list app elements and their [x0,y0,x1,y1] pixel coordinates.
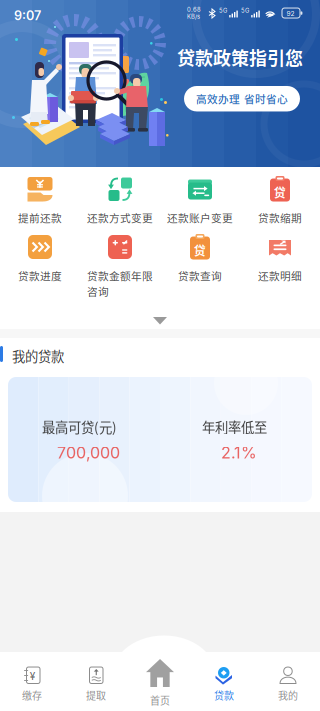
staticText: 首页 [150,693,170,707]
staticText: 9:07 [14,8,41,23]
button[interactable]: 贷 [160,234,240,290]
staticText: 最高可贷(元) [42,417,117,436]
staticText: ¥ [30,670,36,682]
button[interactable]: 还款账户变更 [160,176,240,232]
staticText: KB/s [187,13,200,20]
staticText: 年利率低至 [202,417,267,436]
staticText: 提取 [86,688,106,702]
button[interactable]: 我的 [256,652,320,711]
button[interactable]: 还款方式变更 [80,176,160,232]
staticText: 我的 [278,688,298,702]
staticText: 还款方式变更 [87,210,153,225]
button[interactable]: 贷款金额年限 咨询 [80,234,160,290]
staticText: 92 [287,10,295,18]
staticText: 贷 [194,241,206,259]
staticText: 贷款 [214,688,234,702]
button[interactable]: 贷 [240,176,320,232]
staticText: 贷款查询 [178,268,222,283]
button[interactable]: 提取 [64,652,128,711]
staticText: 缴存 [22,688,42,702]
staticText: 贷款金额年限 咨询 [87,268,153,299]
button[interactable]: 贷款进度 [0,234,80,290]
staticText: 5G [219,7,227,14]
staticText: 5G [241,7,249,14]
staticText: 0.68 [187,6,201,13]
staticText: 贷款政策指引您 [177,44,303,70]
staticText: 贷款缩期 [258,210,302,225]
staticText: 还款账户变更 [167,210,233,225]
button[interactable]: 贷款 [192,652,256,711]
staticText: 我的贷款 [12,346,64,365]
staticText: 提前还款 [18,210,62,225]
staticText: 贷款进度 [18,268,62,283]
button[interactable]: 高效办理 省时省心 [184,86,300,111]
button[interactable]: 首页 [128,652,192,711]
button[interactable]: ¥ [0,652,64,711]
button[interactable]: 提前还款 [0,176,80,232]
button[interactable]: 展开 [0,305,320,329]
staticText: 贷 [274,183,286,201]
button[interactable]: 还款明细 [240,234,320,290]
staticText: 还款明细 [258,268,302,283]
staticText: 2.1% [221,443,257,462]
staticText: 高效办理 省时省心 [196,91,288,106]
staticText: 700,000 [57,443,120,462]
